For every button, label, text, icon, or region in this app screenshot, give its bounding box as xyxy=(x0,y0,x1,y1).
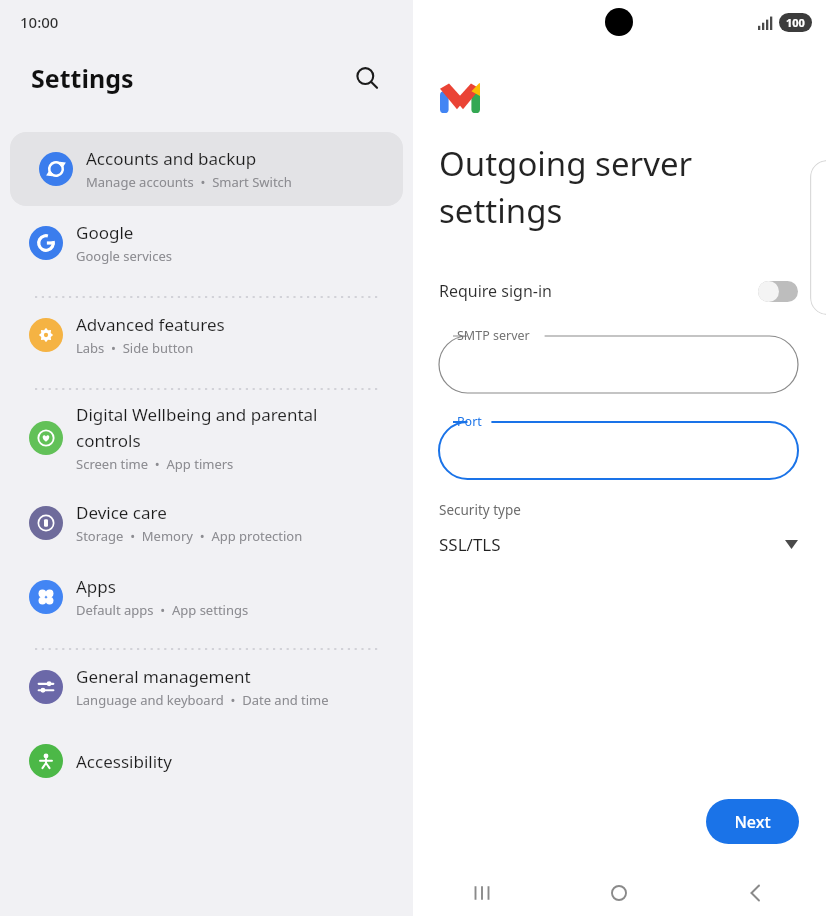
staticText: SMTP server xyxy=(457,327,530,344)
staticText: Accessibility xyxy=(76,750,172,773)
button[interactable]: Search xyxy=(347,58,387,98)
button[interactable]: Apps xyxy=(0,560,413,634)
staticText: Manage accounts • Smart Switch xyxy=(86,173,292,191)
staticText: Google xyxy=(76,221,134,244)
staticText: Next xyxy=(734,811,771,833)
button[interactable]: Google xyxy=(0,206,413,280)
button[interactable]: Accessibility xyxy=(0,724,413,798)
staticText: Labs • Side button xyxy=(76,339,194,357)
staticText: 100 xyxy=(786,15,805,30)
button[interactable]: General management xyxy=(0,650,413,724)
staticText: Apps xyxy=(76,575,116,598)
staticText: SSL/TLS xyxy=(439,533,501,556)
staticText: Device care xyxy=(76,501,167,524)
staticText: Digital Wellbeing and parental controls xyxy=(76,403,318,452)
staticText: 10:00 xyxy=(20,12,59,32)
button[interactable]: Device care xyxy=(0,486,413,560)
staticText: General management xyxy=(76,665,251,688)
button[interactable]: Accounts and backup xyxy=(10,132,403,206)
staticText: Accounts and backup xyxy=(86,147,257,170)
button[interactable]: SMTP server xyxy=(439,327,798,393)
staticText: Advanced features xyxy=(76,313,225,336)
button[interactable]: Home xyxy=(550,870,688,916)
staticText: Port xyxy=(457,413,482,430)
button[interactable]: Digital Wellbeing and parental controls xyxy=(0,390,413,486)
staticText: Outgoing server settings xyxy=(439,141,693,233)
button[interactable]: Require sign-in xyxy=(413,270,826,312)
staticText: Language and keyboard • Date and time xyxy=(76,691,329,709)
staticText: Security type xyxy=(439,501,521,519)
staticText: Default apps • App settings xyxy=(76,601,249,619)
staticText: Google services xyxy=(76,247,172,265)
staticText: Storage • Memory • App protection xyxy=(76,527,303,545)
button[interactable]: Back xyxy=(688,870,826,916)
button[interactable]: Security type xyxy=(413,501,826,556)
staticText: Require sign-in xyxy=(439,280,552,302)
button[interactable]: Port xyxy=(439,413,798,479)
button[interactable]: Recents xyxy=(413,870,550,916)
staticText: Screen time • App timers xyxy=(76,455,234,473)
staticText: Settings xyxy=(31,61,134,95)
button[interactable]: Advanced features xyxy=(0,298,413,372)
button[interactable]: Next xyxy=(706,799,799,844)
